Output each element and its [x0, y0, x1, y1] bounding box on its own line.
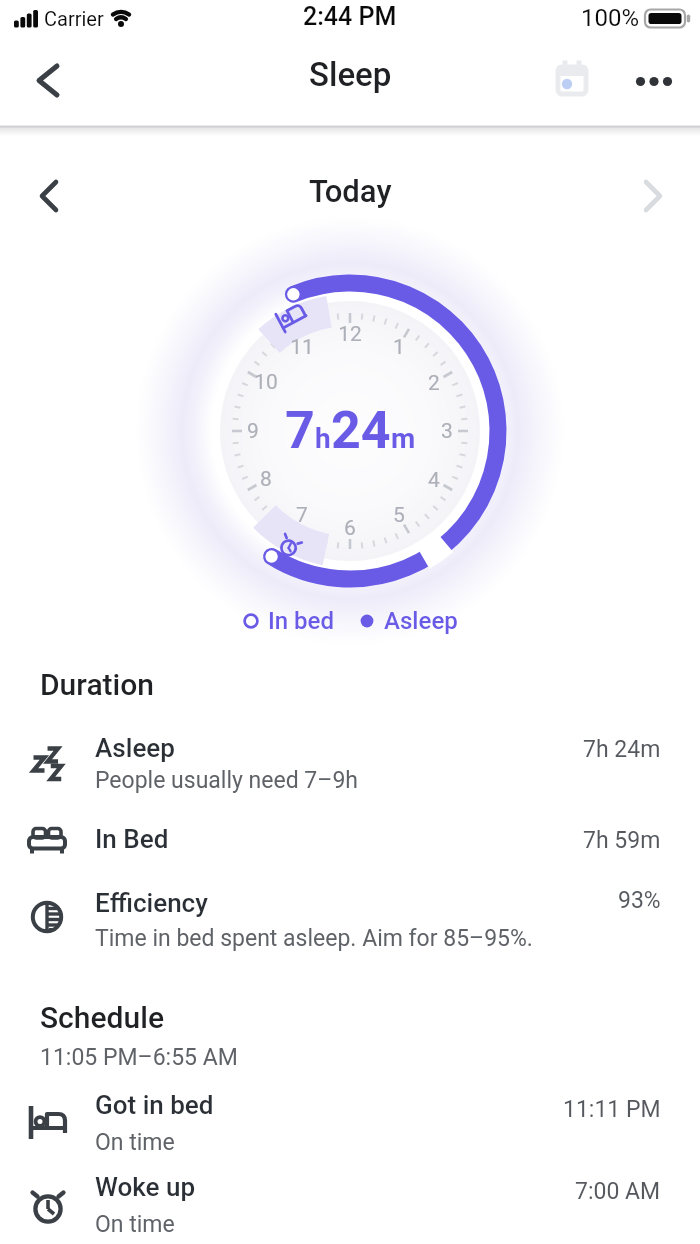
staticText: 2 — [428, 371, 440, 396]
button[interactable] — [626, 55, 682, 107]
button[interactable]: Woke up — [0, 1168, 700, 1244]
staticText: People usually need 7–9h — [95, 767, 358, 794]
button[interactable]: Got in bed — [0, 1086, 700, 1162]
staticText: Carrier — [44, 7, 104, 30]
staticText: 9 — [247, 419, 259, 444]
staticText: 8 — [260, 467, 272, 492]
staticText: Schedule — [40, 1000, 164, 1035]
staticText: 4 — [428, 468, 440, 493]
staticText: 7:00 AM — [575, 1178, 661, 1205]
button[interactable] — [24, 168, 76, 220]
staticText: 12 — [338, 322, 362, 347]
button[interactable] — [24, 56, 76, 108]
staticText: Duration — [40, 667, 155, 702]
staticText: In bed — [268, 607, 335, 635]
staticText: 11:11 PM — [563, 1096, 661, 1123]
staticText: 100% — [581, 4, 640, 32]
staticText: 7 — [285, 400, 315, 461]
staticText: 7h 59m — [583, 827, 661, 854]
staticText: In Bed — [95, 824, 169, 854]
staticText: 7h 24m — [583, 736, 661, 763]
button[interactable]: In Bed — [0, 818, 700, 868]
staticText: m — [391, 422, 416, 455]
staticText: 11 — [290, 335, 314, 360]
staticText: 24 — [331, 400, 391, 461]
staticText: 6 — [344, 516, 356, 541]
staticText: 5 — [393, 503, 405, 528]
staticText: 10 — [254, 370, 278, 395]
staticText: Sleep — [309, 55, 392, 94]
staticText: On time — [95, 1211, 175, 1238]
staticText: Asleep — [384, 607, 458, 635]
staticText: Time in bed spent asleep. Aim for 85–95%… — [95, 925, 533, 952]
staticText: Asleep — [95, 733, 175, 763]
staticText: 7 — [296, 503, 308, 528]
staticText: Efficiency — [95, 888, 208, 918]
staticText: Got in bed — [95, 1090, 214, 1120]
button[interactable]: Asleep — [0, 726, 700, 804]
button[interactable] — [546, 55, 598, 107]
staticText: Today — [309, 173, 392, 209]
staticText: Woke up — [95, 1172, 196, 1202]
staticText: 11:05 PM–6:55 AM — [40, 1044, 238, 1071]
staticText: 1 — [393, 335, 405, 360]
staticText: On time — [95, 1129, 175, 1156]
staticText: 2:44 PM — [303, 2, 397, 31]
staticText: h — [315, 422, 331, 455]
staticText: 93% — [618, 887, 661, 914]
button[interactable]: Efficiency — [0, 886, 700, 964]
button[interactable] — [624, 168, 676, 220]
staticText: 3 — [441, 419, 453, 444]
